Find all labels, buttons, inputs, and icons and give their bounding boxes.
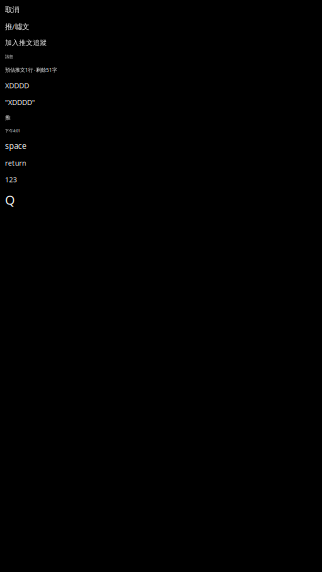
staticText: 加入推文追蹤 xyxy=(5,39,47,47)
staticText: 預估推文1行 · 剩餘51字 xyxy=(5,66,57,73)
staticText: 下午4:01 xyxy=(5,128,20,133)
staticText: XDDDD xyxy=(5,80,29,90)
staticText: "XDDDD" xyxy=(5,97,35,107)
staticText: Q xyxy=(5,191,15,209)
staticText: 訊息 xyxy=(5,54,13,59)
staticText: 推 xyxy=(5,114,11,121)
staticText: 推/噓文 xyxy=(5,21,29,32)
staticText: 123 xyxy=(5,175,17,184)
staticText: space xyxy=(5,140,27,151)
staticText: return xyxy=(5,158,26,168)
staticText: 取消 xyxy=(5,5,19,14)
